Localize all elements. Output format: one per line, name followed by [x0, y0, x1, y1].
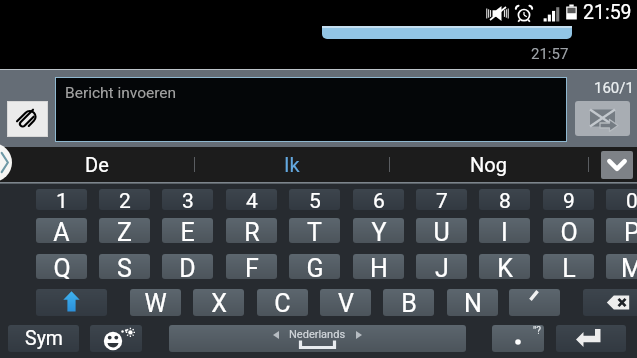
staticText: S [117, 254, 132, 279]
button[interactable]: Acute accent [509, 289, 560, 316]
staticText: J [435, 254, 449, 279]
button[interactable]: Sym [8, 325, 79, 352]
staticText: 2 [119, 189, 131, 210]
button[interactable]: D [162, 254, 213, 279]
button[interactable]: J [416, 254, 467, 279]
staticText: E [180, 218, 195, 243]
button[interactable]: W [130, 289, 181, 316]
staticText: 1 [56, 189, 68, 210]
staticText: C [274, 289, 291, 316]
button[interactable]: 1 [36, 189, 87, 210]
button[interactable]: E [162, 218, 213, 243]
staticText: 160/1 [594, 79, 634, 97]
button[interactable]: Open side panel [0, 143, 12, 182]
button[interactable]: C [257, 289, 308, 316]
staticText: W [144, 289, 167, 316]
button[interactable]: M [606, 254, 637, 279]
button[interactable]: Send message [575, 101, 630, 136]
staticText: N [464, 289, 482, 316]
button[interactable]: Period [492, 325, 544, 352]
button[interactable]: B [383, 289, 434, 316]
staticText: F [245, 254, 259, 279]
button[interactable]: Bericht invoeren [56, 78, 566, 141]
button[interactable]: Z [99, 218, 150, 243]
staticText: K [497, 254, 513, 279]
button[interactable]: K [479, 254, 530, 279]
button[interactable]: Shift [36, 289, 107, 316]
staticText: P [624, 218, 637, 243]
staticText: T [307, 218, 322, 243]
button[interactable]: Ik [194, 147, 389, 182]
staticText: H [370, 254, 388, 279]
button[interactable]: O [543, 218, 594, 243]
button[interactable]: Enter [556, 325, 626, 352]
button[interactable]: Backspace [583, 289, 637, 316]
button[interactable]: L [543, 254, 594, 279]
staticText: B [401, 289, 417, 316]
staticText: A [53, 218, 70, 243]
staticText: I [501, 218, 508, 243]
button[interactable]: 0 [606, 189, 637, 210]
staticText: "? [533, 325, 541, 337]
staticText: Nog [470, 153, 507, 176]
button[interactable]: 9 [543, 189, 594, 210]
button[interactable]: Q [36, 254, 87, 279]
staticText: R [244, 218, 260, 243]
button[interactable]: 2 [99, 189, 150, 210]
button[interactable]: S [99, 254, 150, 279]
button[interactable]: F [226, 254, 277, 279]
button[interactable]: Show more suggestions [601, 151, 633, 179]
button[interactable]: Nog [389, 147, 588, 182]
button[interactable]: Emoji [90, 325, 142, 352]
button[interactable]: 7 [416, 189, 467, 210]
button[interactable]: Space, Nederlands [169, 325, 466, 352]
staticText: 3 [182, 189, 194, 210]
staticText: 5 [309, 189, 321, 210]
button[interactable]: 8 [479, 189, 530, 210]
staticText: X [211, 289, 227, 316]
staticText: 7 [436, 189, 448, 210]
staticText: 21:57 [531, 45, 569, 63]
staticText: 21:59 [583, 1, 632, 24]
button[interactable]: G [289, 254, 340, 279]
button[interactable]: T [289, 218, 340, 243]
button[interactable]: De [0, 147, 194, 182]
button[interactable]: N [447, 289, 498, 316]
button[interactable]: X [193, 289, 244, 316]
staticText: O [560, 218, 578, 243]
staticText: Z [117, 218, 132, 243]
staticText: G [306, 254, 324, 279]
staticText: Nederlands [289, 328, 346, 341]
button[interactable]: Y [353, 218, 404, 243]
staticText: 6 [373, 189, 385, 210]
button[interactable]: V [320, 289, 371, 316]
button[interactable]: H [353, 254, 404, 279]
staticText: U [433, 218, 450, 243]
staticText: V [338, 289, 354, 316]
button[interactable]: R [226, 218, 277, 243]
staticText: 8 [499, 189, 511, 210]
button[interactable]: 6 [353, 189, 404, 210]
staticText: De [85, 153, 109, 176]
button[interactable]: 3 [162, 189, 213, 210]
staticText: Y [371, 218, 387, 243]
staticText: M [621, 254, 637, 279]
button[interactable]: 4 [226, 189, 277, 210]
staticText: Q [53, 254, 71, 279]
button[interactable]: I [479, 218, 530, 243]
staticText: Sym [25, 327, 63, 350]
button[interactable]: P [606, 218, 637, 243]
staticText: 0 [626, 189, 637, 210]
staticText: 4 [246, 189, 258, 210]
staticText: D [179, 254, 196, 279]
button[interactable]: Attach file [8, 102, 47, 136]
staticText: Ik [284, 153, 300, 176]
staticText: Bericht invoeren [65, 84, 177, 102]
button[interactable]: 5 [289, 189, 340, 210]
staticText: L [562, 254, 576, 279]
staticText: 9 [563, 189, 575, 210]
button[interactable]: U [416, 218, 467, 243]
button[interactable]: A [36, 218, 87, 243]
